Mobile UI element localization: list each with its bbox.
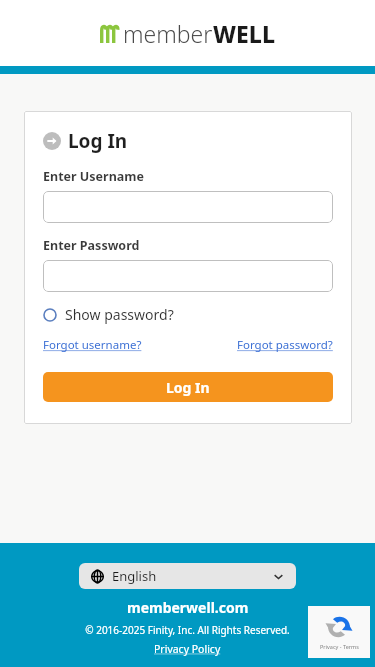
staticText: English: [112, 567, 157, 585]
button[interactable]: Show password?: [43, 303, 174, 326]
staticText: member: [123, 18, 213, 49]
staticText: Log In: [68, 128, 128, 154]
other: Log in: [43, 132, 61, 150]
button[interactable]: Forgot password?: [237, 337, 333, 353]
button[interactable]: English: [79, 563, 296, 589]
staticText: © 2016-2025 Finity, Inc. All Rights Rese…: [85, 623, 290, 637]
staticText: WELL: [213, 18, 275, 49]
staticText: Privacy - Terms: [320, 643, 359, 650]
button[interactable]: Forgot username?: [43, 337, 142, 353]
button[interactable]: Privacy Policy: [154, 642, 221, 656]
staticText: memberwell.com: [127, 598, 249, 617]
button[interactable]: [43, 260, 333, 292]
staticText: Log In: [166, 378, 210, 397]
staticText: Show password?: [65, 305, 174, 324]
button[interactable]: [43, 191, 333, 223]
staticText: Enter Password: [43, 237, 140, 254]
staticText: Enter Username: [43, 168, 144, 185]
button[interactable]: Log In: [43, 372, 333, 402]
button[interactable]: reCAPTCHA Privacy and Terms: [308, 606, 370, 658]
